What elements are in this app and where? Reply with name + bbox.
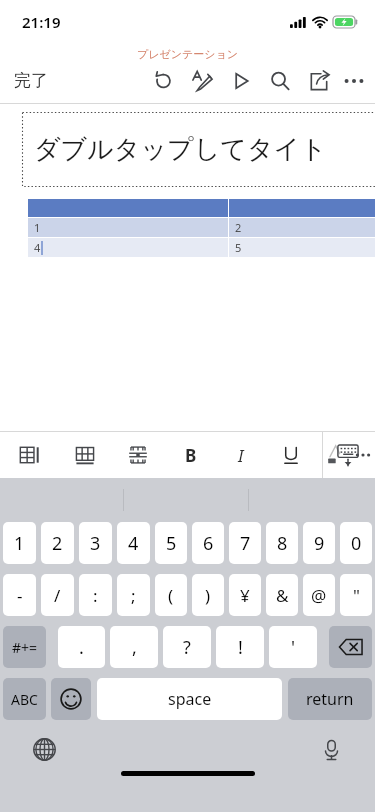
staticText: return (306, 688, 354, 710)
staticText: ? (183, 635, 191, 660)
button[interactable]: : (79, 574, 112, 616)
staticText: , (132, 635, 137, 660)
button[interactable]: 6 (192, 522, 224, 564)
button[interactable]: 5 (229, 238, 375, 257)
staticText: 5 (235, 240, 242, 255)
staticText: プレゼンテーション (137, 47, 239, 61)
button[interactable]: 8 (266, 522, 298, 564)
button[interactable]: ¥ (229, 574, 261, 616)
button[interactable]: 1 (3, 522, 36, 564)
button[interactable]: 0 (340, 522, 372, 564)
button[interactable]: 7 (229, 522, 261, 564)
staticText: & (276, 584, 289, 607)
button[interactable]: ABC (3, 678, 46, 720)
button[interactable]: Change keyboard (28, 733, 60, 765)
staticText: B (185, 444, 197, 467)
button[interactable]: Hide keyboard (331, 438, 365, 472)
button[interactable]: Insert table column (16, 441, 44, 469)
staticText: 1 (34, 220, 41, 235)
button[interactable]: 5 (155, 522, 187, 564)
button[interactable]: , (110, 626, 158, 668)
button[interactable]: - (3, 574, 36, 616)
staticText: : (93, 584, 98, 607)
staticText: ; (131, 584, 136, 607)
staticText: - (17, 584, 23, 607)
button[interactable]: More formatting (351, 443, 375, 467)
button[interactable]: Undo (148, 66, 178, 96)
button[interactable]: ( (155, 574, 187, 616)
button[interactable]: Emoji (51, 678, 91, 720)
button[interactable]: Highlight (323, 441, 351, 469)
button[interactable]: " (340, 574, 372, 616)
button[interactable]: Cell format (124, 441, 152, 469)
staticText: 1 (14, 531, 25, 556)
staticText: 5 (166, 531, 177, 556)
staticText: #+= (12, 638, 38, 657)
staticText: space (168, 688, 212, 710)
button[interactable]: Dictation (315, 733, 347, 765)
staticText: ! (238, 635, 243, 660)
button[interactable]: 3 (79, 522, 112, 564)
button[interactable]: 9 (303, 522, 335, 564)
staticText: 2 (235, 220, 242, 235)
button[interactable]: 4 (117, 522, 150, 564)
button[interactable]: space (97, 678, 282, 720)
staticText: 3 (90, 531, 101, 556)
staticText: 4 (34, 240, 41, 255)
staticText: 8 (277, 531, 288, 556)
button[interactable]: ; (117, 574, 150, 616)
button[interactable]: ! (216, 626, 264, 668)
staticText: 6 (203, 531, 214, 556)
staticText: ABC (11, 690, 38, 709)
button[interactable]: Annotate (187, 66, 217, 96)
staticText: 9 (314, 531, 325, 556)
staticText: 完了 (14, 70, 48, 91)
staticText: 4 (128, 531, 139, 556)
button[interactable]: & (266, 574, 298, 616)
button[interactable]: B (177, 441, 205, 469)
staticText: 2 (52, 531, 63, 556)
button[interactable]: Underline (277, 441, 305, 469)
staticText: / (54, 584, 61, 607)
button[interactable]: Search (265, 66, 295, 96)
button[interactable]: / (41, 574, 74, 616)
button[interactable]: ? (163, 626, 211, 668)
button[interactable]: ' (269, 626, 317, 668)
button[interactable]: Table style (71, 441, 99, 469)
button[interactable]: Share (304, 66, 334, 96)
button[interactable]: 4 (28, 238, 228, 257)
staticText: ' (291, 635, 296, 660)
button[interactable]: #+= (3, 626, 46, 668)
staticText: 0 (351, 531, 362, 556)
button[interactable]: 1 (28, 218, 228, 237)
button[interactable]: More (339, 66, 369, 96)
button[interactable]: 完了 (0, 62, 62, 99)
button[interactable]: Delete (329, 626, 372, 668)
staticText: . (79, 635, 84, 660)
staticText: ダブルタップしてタイト (34, 133, 327, 166)
staticText: " (353, 584, 360, 607)
staticText: 21:19 (22, 12, 61, 32)
button[interactable]: . (58, 626, 105, 668)
staticText: @ (311, 584, 327, 607)
button[interactable]: @ (303, 574, 335, 616)
staticText: ¥ (240, 584, 250, 607)
button[interactable]: 2 (41, 522, 74, 564)
staticText: ) (205, 584, 211, 607)
button[interactable]: Play (226, 66, 256, 96)
button[interactable]: return (288, 678, 372, 720)
button[interactable]: I (227, 441, 255, 469)
staticText: 7 (240, 531, 251, 556)
staticText: I (238, 444, 244, 467)
button[interactable]: ) (192, 574, 224, 616)
staticText: ( (168, 584, 174, 607)
button[interactable]: ダブルタップしてタイト (22, 112, 375, 187)
button[interactable]: 2 (229, 218, 375, 237)
